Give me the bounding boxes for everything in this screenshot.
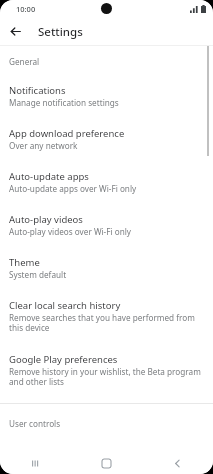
button[interactable]: Clear local search history (0, 291, 213, 339)
staticText: Over any network (9, 140, 78, 151)
button[interactable]: Back (142, 452, 213, 474)
staticText: Settings (38, 24, 83, 40)
staticText: Google Play preferences (9, 353, 118, 366)
staticText: Manage notification settings (9, 97, 119, 108)
staticText: 10:00 (16, 4, 36, 14)
button[interactable]: App download preference (0, 119, 213, 156)
staticText: Remove history in your wishlist, the Bet… (9, 366, 203, 388)
staticText: Remove searches that you have performed … (9, 312, 203, 334)
button[interactable]: Home (71, 452, 142, 474)
button[interactable]: Theme (0, 248, 213, 285)
button[interactable]: Auto-update apps (0, 162, 213, 199)
button[interactable]: Google Play preferences (0, 345, 213, 393)
staticText: Notifications (9, 84, 66, 97)
staticText: Theme (9, 256, 40, 269)
staticText: General (9, 56, 213, 67)
button[interactable]: Recent apps (0, 452, 71, 474)
staticText: System default (9, 269, 67, 280)
button[interactable]: Back (5, 21, 26, 42)
button[interactable]: Auto-play videos (0, 205, 213, 242)
staticText: Auto-update apps over Wi-Fi only (9, 183, 137, 194)
staticText: Auto-play videos over Wi-Fi only (9, 226, 132, 237)
staticText: Auto-update apps (9, 170, 89, 183)
button[interactable]: Notifications (0, 76, 213, 113)
staticText: App download preference (9, 127, 125, 140)
staticText: User controls (9, 418, 213, 429)
staticText: Auto-play videos (9, 213, 83, 226)
staticText: Clear local search history (9, 299, 121, 312)
